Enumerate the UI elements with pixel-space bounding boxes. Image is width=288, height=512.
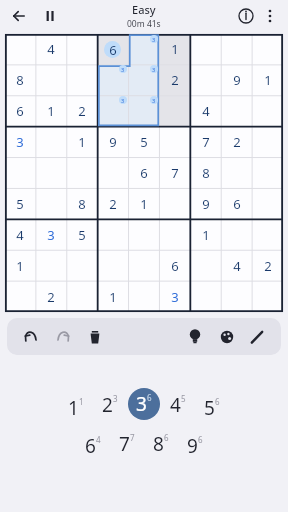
- button[interactable]: 3: [127, 385, 161, 423]
- staticText: 9: [187, 433, 198, 459]
- staticText: 2: [109, 195, 117, 213]
- staticText: 4: [202, 102, 210, 120]
- button[interactable]: 4: [161, 386, 195, 424]
- staticText: 8: [153, 431, 164, 457]
- button[interactable]: [5, 34, 283, 312]
- staticText: 1: [264, 71, 272, 89]
- staticText: 6: [164, 432, 169, 443]
- button[interactable]: Pencil notes: [243, 323, 271, 351]
- staticText: 6: [215, 396, 220, 407]
- staticText: 9: [109, 133, 117, 151]
- staticText: 7: [202, 133, 210, 151]
- button[interactable]: 7: [110, 425, 144, 463]
- button[interactable]: 2: [93, 386, 127, 424]
- button[interactable]: Color: [213, 323, 241, 351]
- staticText: 8: [78, 195, 86, 213]
- staticText: 1: [140, 195, 148, 213]
- staticText: 1: [78, 133, 86, 151]
- staticText: Easy: [132, 2, 156, 17]
- staticText: 1: [68, 395, 79, 421]
- staticText: 3: [152, 36, 156, 43]
- staticText: 3: [152, 97, 156, 104]
- staticText: 2: [102, 392, 113, 418]
- staticText: 1: [171, 40, 179, 58]
- button[interactable]: 1: [59, 389, 93, 427]
- button[interactable]: Erase: [81, 323, 109, 351]
- staticText: 3: [113, 393, 118, 404]
- staticText: 7: [119, 431, 130, 457]
- staticText: 6: [233, 195, 241, 213]
- staticText: 9: [202, 195, 210, 213]
- staticText: 8: [202, 164, 210, 182]
- staticText: 6: [16, 102, 24, 120]
- staticText: 3: [121, 97, 125, 104]
- staticText: 3: [136, 391, 147, 417]
- staticText: 5: [204, 395, 215, 421]
- staticText: 1: [16, 257, 24, 275]
- staticText: 1: [79, 396, 84, 407]
- staticText: 9: [233, 71, 241, 89]
- button[interactable]: Back: [6, 3, 32, 29]
- staticText: 3: [16, 133, 24, 151]
- staticText: 3: [47, 226, 55, 244]
- staticText: 1: [109, 288, 117, 306]
- staticText: 6: [85, 433, 96, 459]
- staticText: 8: [16, 71, 24, 89]
- staticText: 2: [264, 257, 272, 275]
- staticText: 5: [16, 195, 24, 213]
- staticText: 2: [47, 288, 55, 306]
- staticText: 1: [202, 226, 210, 244]
- button[interactable]: 8: [144, 425, 178, 463]
- button[interactable]: Info: [234, 4, 258, 28]
- staticText: 3: [152, 66, 156, 73]
- staticText: 7: [130, 432, 135, 443]
- button[interactable]: 9: [178, 427, 212, 465]
- button[interactable]: Redo: [49, 323, 77, 351]
- staticText: 6: [198, 434, 203, 445]
- staticText: 00m 41s: [127, 18, 161, 30]
- staticText: 6: [140, 164, 148, 182]
- staticText: 4: [16, 226, 24, 244]
- staticText: 4: [170, 392, 181, 418]
- staticText: 1: [47, 102, 55, 120]
- staticText: 3: [121, 66, 125, 73]
- staticText: 3: [171, 288, 179, 306]
- staticText: 6: [109, 41, 117, 58]
- staticText: 7: [171, 164, 179, 182]
- button[interactable]: Undo: [17, 323, 45, 351]
- staticText: 4: [96, 434, 101, 445]
- staticText: 2: [78, 102, 86, 120]
- staticText: 4: [47, 40, 55, 58]
- staticText: 5: [181, 393, 186, 404]
- staticText: 5: [78, 226, 86, 244]
- staticText: 2: [233, 133, 241, 151]
- staticText: 6: [171, 257, 179, 275]
- staticText: 5: [140, 133, 148, 151]
- staticText: 2: [171, 71, 179, 89]
- button[interactable]: 5: [195, 389, 229, 427]
- staticText: 6: [147, 392, 152, 403]
- button[interactable]: 6: [76, 427, 110, 465]
- button[interactable]: More options: [258, 4, 282, 28]
- staticText: 4: [233, 257, 241, 275]
- button[interactable]: Pause: [38, 4, 62, 28]
- button[interactable]: Hint: [181, 323, 209, 351]
